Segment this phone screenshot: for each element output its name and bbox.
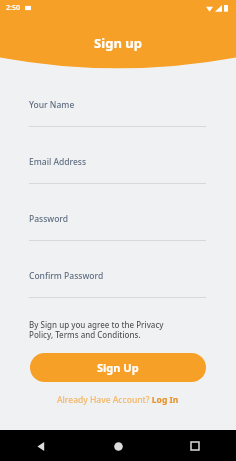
staticText: Sign up	[0, 34, 236, 52]
staticText: Already Have Account? Log In	[57, 394, 179, 406]
staticText: Sign Up	[97, 360, 139, 375]
button[interactable]: Sign Up	[30, 353, 206, 382]
button[interactable]: Confirm Password	[29, 270, 206, 298]
button[interactable]: Recent apps	[184, 435, 206, 457]
button[interactable]: Back	[30, 435, 52, 457]
button[interactable]: Email Address	[29, 156, 206, 184]
staticText: Password	[29, 213, 69, 225]
staticText: By Sign up you agree to the Privacy Poli…	[29, 319, 164, 340]
button[interactable]: Home	[107, 435, 129, 457]
staticText: Email Address	[29, 156, 87, 168]
staticText: Confirm Password	[29, 270, 104, 282]
staticText: 2:50	[6, 3, 20, 13]
button[interactable]: Password	[29, 213, 206, 241]
staticText: Your Name	[29, 99, 75, 111]
button[interactable]: Already Have Account? Log In	[0, 394, 236, 406]
button[interactable]: Your Name	[29, 99, 206, 127]
